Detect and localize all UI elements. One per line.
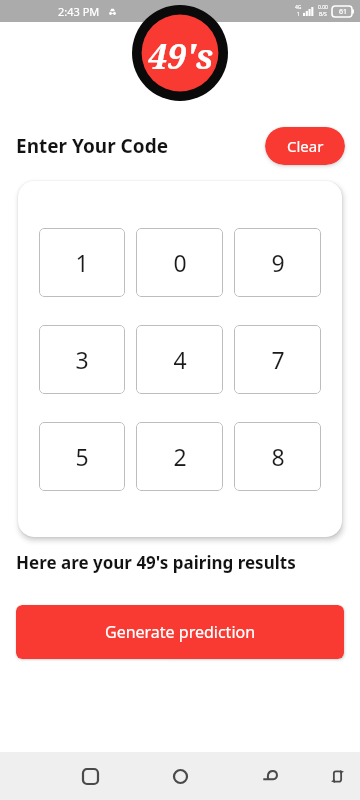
staticText: 61 xyxy=(339,7,348,17)
button[interactable]: 2 xyxy=(136,422,223,491)
button[interactable]: Recent apps xyxy=(74,760,106,792)
staticText: 4G xyxy=(295,4,302,11)
staticText: 8 xyxy=(271,441,285,472)
button[interactable]: 5 xyxy=(39,422,125,491)
staticText: Here are your 49's pairing results xyxy=(16,551,296,574)
button[interactable]: Home xyxy=(164,760,196,792)
staticText: 0.00 xyxy=(318,4,328,11)
staticText: Generate prediction xyxy=(105,621,256,643)
staticText: 1 xyxy=(297,11,300,18)
staticText: 0 xyxy=(173,247,187,278)
staticText: 3 xyxy=(75,344,89,375)
staticText: 49's xyxy=(148,33,214,79)
button[interactable]: Clear xyxy=(265,127,345,165)
button[interactable]: Generate prediction xyxy=(16,605,344,659)
staticText: 7 xyxy=(271,344,285,375)
staticText: 5 xyxy=(75,441,89,472)
button[interactable]: 1 xyxy=(39,228,125,297)
staticText: B/S xyxy=(319,11,327,18)
staticText: 9 xyxy=(271,247,285,278)
staticText: 1 xyxy=(75,247,89,278)
staticText: 2 xyxy=(173,441,187,472)
button[interactable]: 3 xyxy=(39,325,125,394)
button[interactable]: Rotate screen xyxy=(322,761,352,791)
button[interactable]: 4 xyxy=(136,325,223,394)
button[interactable]: Back xyxy=(254,760,286,792)
staticText: Clear xyxy=(287,136,324,156)
button[interactable]: 8 xyxy=(234,422,321,491)
button[interactable]: 0 xyxy=(136,228,223,297)
staticText: 2:43 PM xyxy=(58,4,100,19)
staticText: 4 xyxy=(173,344,187,375)
staticText: Enter Your Code xyxy=(16,133,169,159)
button[interactable]: 7 xyxy=(234,325,321,394)
button[interactable]: 9 xyxy=(234,228,321,297)
